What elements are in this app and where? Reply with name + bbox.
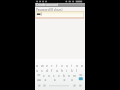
button[interactable]: a [36,68,39,72]
staticText: k [71,68,73,72]
button[interactable]: n [68,73,71,77]
button[interactable]: u [66,63,69,67]
button[interactable]: v [58,73,61,77]
button[interactable]: m [73,73,76,77]
button[interactable]: o [76,63,79,67]
button[interactable]: App title bar [35,3,85,7]
staticText: t [56,63,58,67]
button[interactable]: i [71,63,74,67]
button[interactable]: b [63,73,66,77]
button[interactable]: k [71,68,74,72]
staticText: s [41,68,43,72]
button[interactable]: z [43,73,46,77]
button[interactable]: h [61,68,64,72]
staticText: x [48,73,50,77]
button[interactable]: g [56,68,59,72]
button[interactable]: d [46,68,49,72]
staticText: g [56,68,59,72]
staticText: z [43,73,45,77]
staticText: w [41,63,44,67]
staticText: j [66,68,67,72]
button[interactable]: y [61,63,64,67]
staticText: q [36,63,39,67]
button[interactable]: c [53,73,56,77]
staticText: l [76,68,77,72]
staticText: n [68,73,71,77]
staticText: o [76,63,79,67]
staticText: Create account [36,3,58,7]
button[interactable]: x [48,73,51,77]
button[interactable]: e [46,63,49,67]
staticText: r [51,63,53,67]
button[interactable]: j [66,68,69,72]
staticText: d [46,68,49,72]
button[interactable]: q [36,63,39,67]
button[interactable]: w [41,63,44,67]
staticText: e [46,63,48,67]
staticText: u [66,63,69,67]
button[interactable]: l [76,68,79,72]
button[interactable]: s [41,68,44,72]
button[interactable]: r [51,63,54,67]
staticText: a [36,68,38,72]
staticText: Password (8 chars) [36,8,63,12]
staticText: i [71,63,72,67]
staticText: v [58,73,60,77]
staticText: c [53,73,55,77]
staticText: m [73,73,76,77]
button[interactable]: p [81,63,84,67]
button[interactable]: Password input field [35,11,85,20]
staticText: p [81,63,84,67]
staticText: b [63,73,66,77]
button[interactable]: f [51,68,54,72]
button[interactable]: t [56,63,59,67]
staticText: f [51,68,53,72]
staticText: h [61,68,64,72]
staticText: y [61,63,63,67]
